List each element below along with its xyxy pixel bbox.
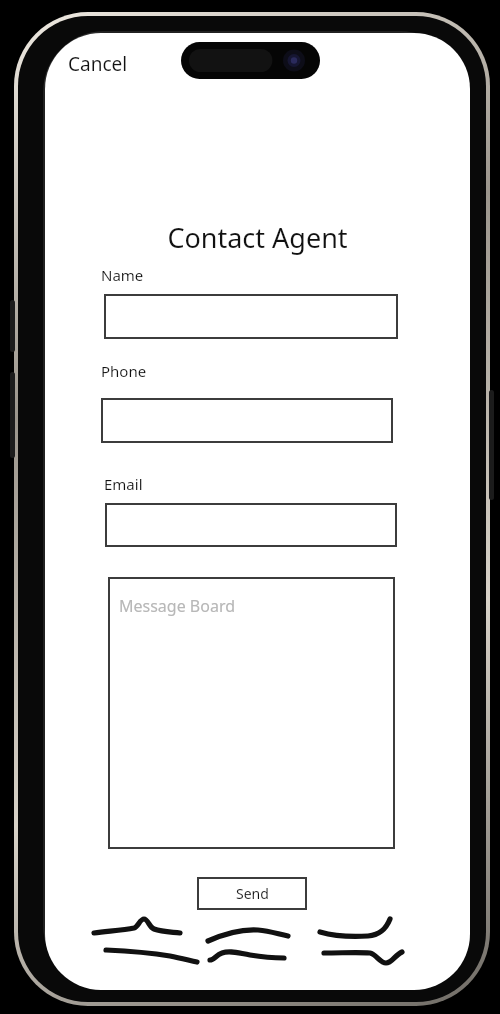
staticText: Email (104, 474, 143, 494)
staticText: Cancel (68, 51, 128, 77)
staticText: Message Board (119, 595, 236, 617)
staticText: Contact Agent (167, 219, 348, 256)
button[interactable]: Name input (104, 294, 398, 339)
button[interactable]: Phone input (101, 398, 393, 443)
staticText: Send (236, 884, 269, 903)
staticText: Name (101, 265, 144, 285)
button[interactable]: Send (197, 877, 307, 910)
staticText: Phone (101, 361, 147, 381)
button[interactable]: Email input (105, 503, 397, 547)
button[interactable]: Cancel (62, 46, 122, 72)
button[interactable]: Message Board (108, 577, 395, 849)
other: Sketch marks (80, 905, 420, 965)
